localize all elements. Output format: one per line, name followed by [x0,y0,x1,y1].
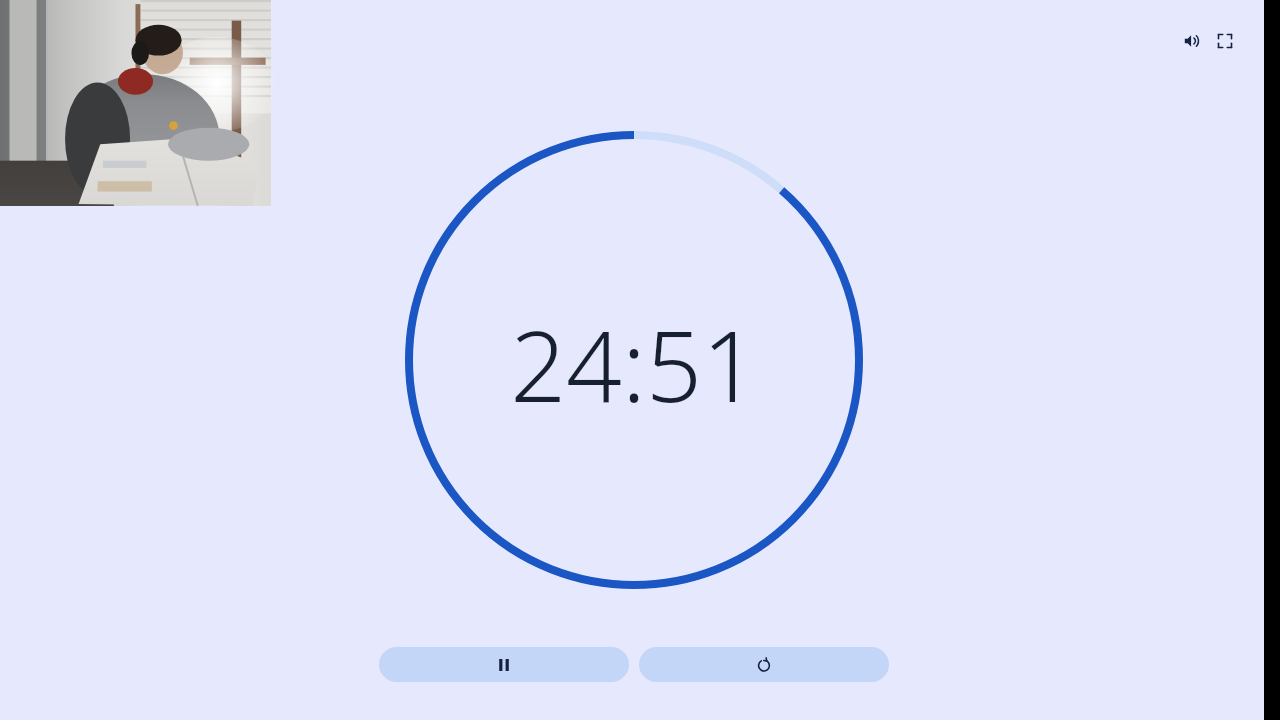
button[interactable]: Fullscreen [1211,27,1239,55]
button[interactable]: Pause [379,647,629,682]
button[interactable]: Mute [1178,27,1206,55]
button[interactable]: Restart [639,647,889,682]
button[interactable]: Video preview [0,0,271,206]
staticText: 24:51 [510,297,758,423]
